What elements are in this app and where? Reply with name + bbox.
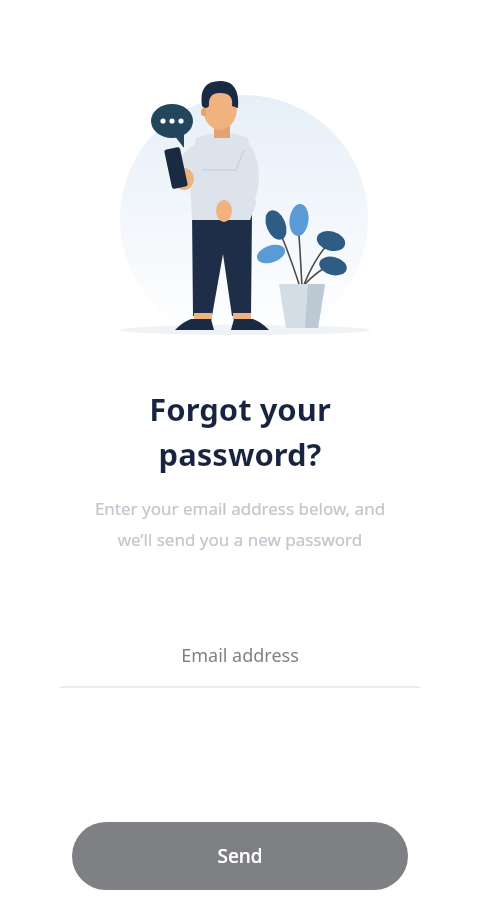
button[interactable]: Email address bbox=[60, 643, 420, 688]
staticText: Forgot your password? bbox=[0, 388, 480, 475]
button[interactable]: Send bbox=[72, 822, 408, 890]
staticText: Email address bbox=[60, 643, 420, 668]
staticText: Send bbox=[217, 843, 263, 869]
staticText: Enter your email address below, and we’l… bbox=[0, 497, 480, 551]
